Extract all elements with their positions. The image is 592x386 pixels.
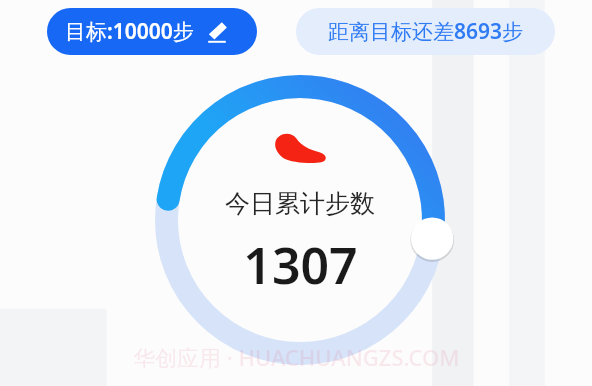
staticText: 1307 (243, 231, 358, 299)
staticText: 今日累计步数 (225, 188, 375, 219)
staticText: 目标:10000步 (65, 17, 194, 46)
staticText: 华创应用 · HUACHUANGZS.COM (133, 342, 460, 372)
button[interactable]: 距离目标还差8693步 (296, 8, 555, 55)
button[interactable]: 目标:10000步 (47, 8, 257, 55)
staticText: 距离目标还差8693步 (328, 17, 524, 46)
other: Edit goal (206, 21, 228, 43)
button[interactable]: 今日累计步数 (148, 68, 452, 372)
